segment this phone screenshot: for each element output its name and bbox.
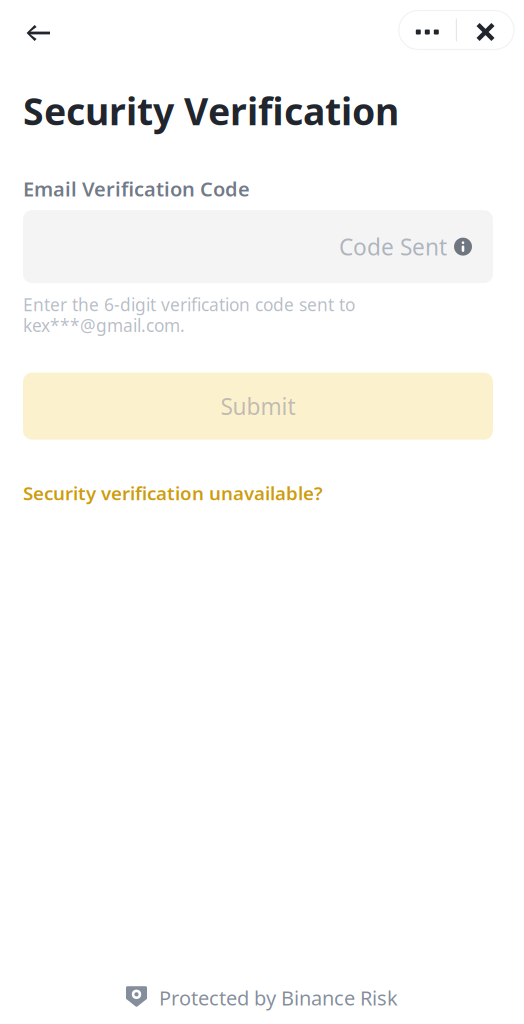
staticText: Security verification unavailable? bbox=[23, 481, 323, 505]
button[interactable]: More options bbox=[399, 10, 456, 49]
button[interactable]: Close bbox=[457, 10, 514, 49]
staticText: Submit bbox=[220, 391, 295, 421]
button[interactable]: Submit bbox=[23, 373, 493, 440]
staticText: Code Sent bbox=[339, 232, 447, 262]
button[interactable]: Back bbox=[23, 10, 74, 50]
button[interactable]: Security verification unavailable? bbox=[23, 481, 323, 505]
staticText: Protected by Binance Risk bbox=[159, 984, 398, 1011]
button[interactable]: Email Verification Code, Code Sent bbox=[23, 210, 493, 283]
staticText: Security Verification bbox=[23, 86, 399, 136]
staticText: kex***@gmail.com. bbox=[23, 314, 185, 337]
staticText: Enter the 6-digit verification code sent… bbox=[23, 293, 355, 316]
staticText: Email Verification Code bbox=[23, 176, 250, 202]
